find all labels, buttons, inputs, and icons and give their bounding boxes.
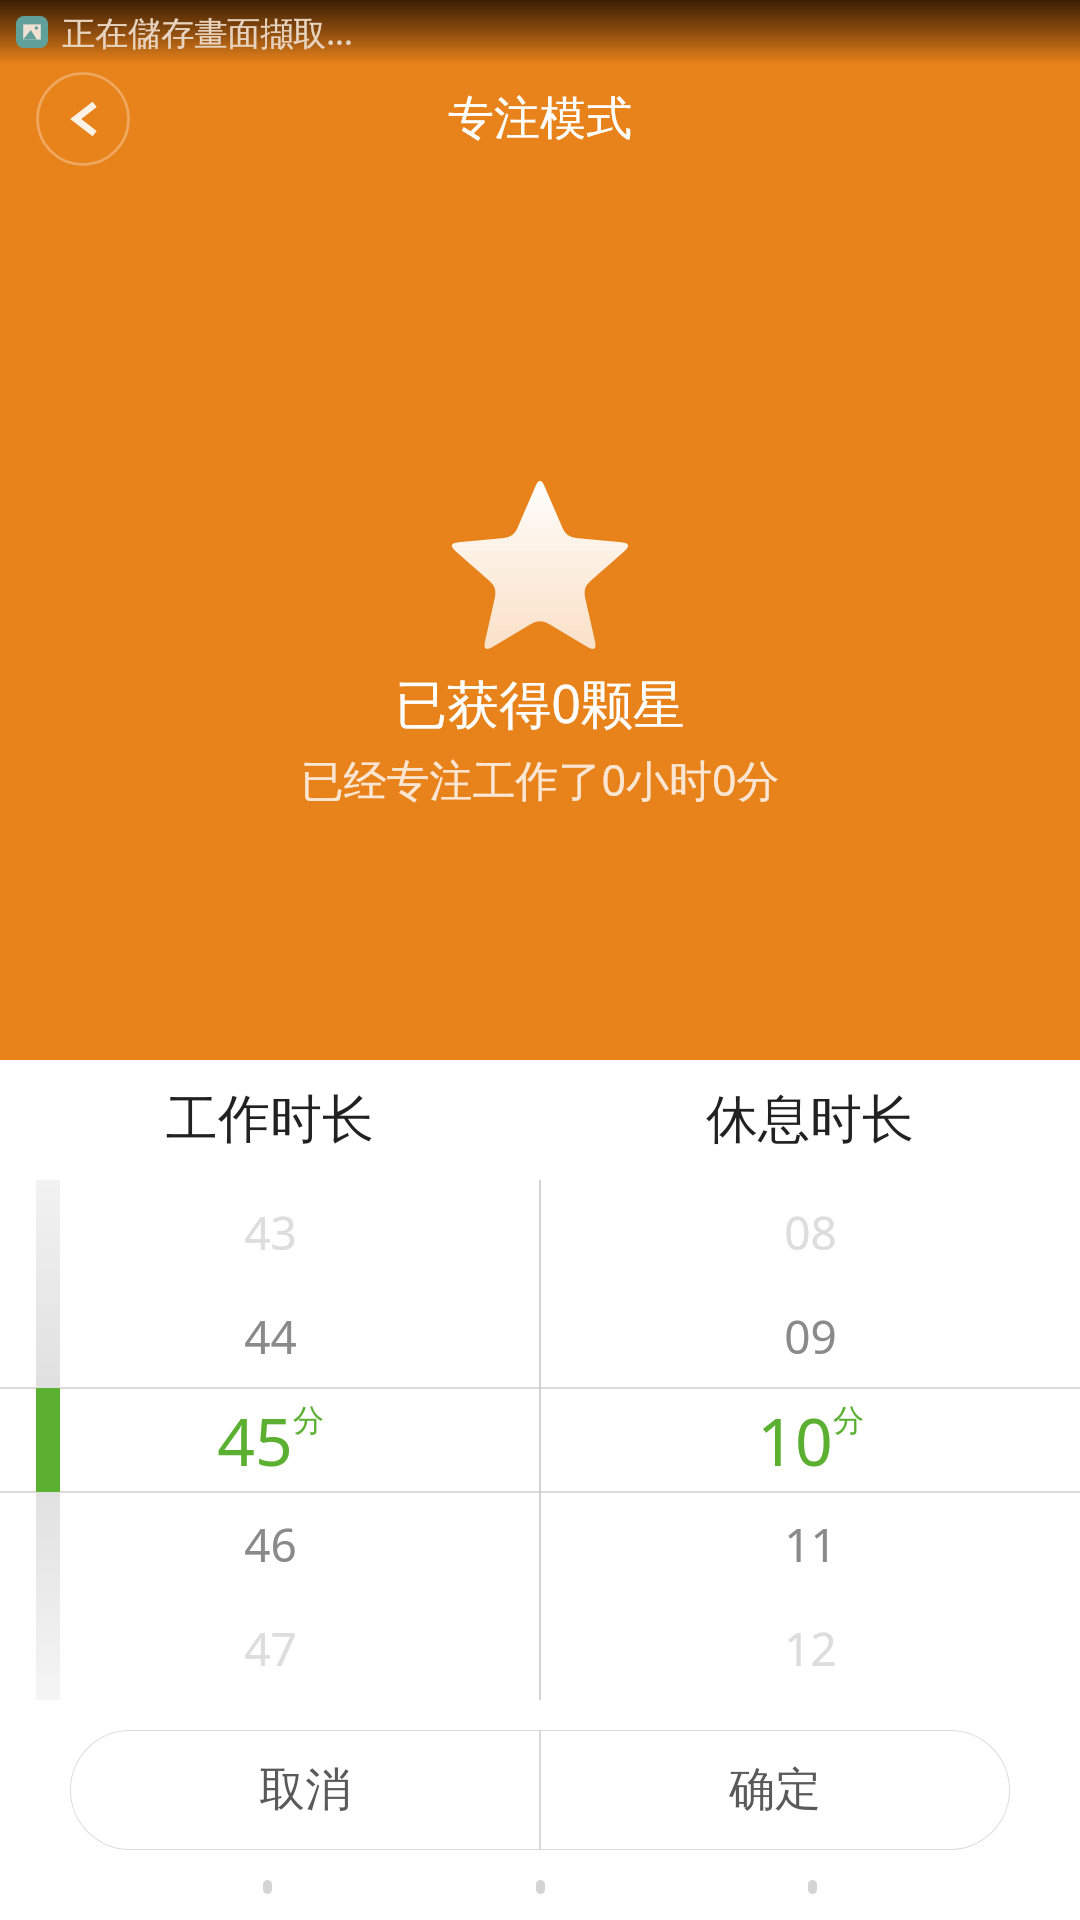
- button[interactable]: Back: [36, 72, 130, 166]
- button[interactable]: 休息时长: [540, 1060, 1080, 1180]
- button[interactable]: 工作时长: [0, 1060, 540, 1180]
- staticText: 45: [217, 1395, 293, 1485]
- staticText: 已经专注工作了0小时0分: [300, 750, 780, 809]
- staticText: 11: [784, 1513, 837, 1576]
- staticText: 10: [757, 1395, 833, 1485]
- button[interactable]: 11: [540, 1492, 1080, 1596]
- staticText: 12: [784, 1617, 837, 1680]
- staticText: 已获得0颗星: [395, 667, 685, 738]
- staticText: 46: [244, 1513, 297, 1576]
- button[interactable]: 确定: [540, 1730, 1010, 1850]
- staticText: 分: [833, 1401, 864, 1440]
- button[interactable]: 09: [540, 1284, 1080, 1388]
- staticText: 08: [784, 1201, 837, 1264]
- staticText: 09: [784, 1305, 837, 1368]
- staticText: 取消: [259, 1761, 351, 1819]
- staticText: 确定: [729, 1761, 821, 1819]
- button[interactable]: 43: [0, 1180, 540, 1284]
- button[interactable]: 08: [540, 1180, 1080, 1284]
- button[interactable]: 12: [540, 1596, 1080, 1700]
- button[interactable]: 47: [0, 1596, 540, 1700]
- button[interactable]: Navigation: [263, 1880, 272, 1894]
- button[interactable]: 44: [0, 1284, 540, 1388]
- button[interactable]: Navigation: [536, 1880, 545, 1894]
- staticText: 47: [244, 1617, 297, 1680]
- staticText: 43: [244, 1201, 297, 1264]
- staticText: 工作时长: [166, 1087, 374, 1153]
- staticText: 分: [293, 1401, 324, 1440]
- button[interactable]: 45: [0, 1388, 540, 1492]
- staticText: 休息时长: [706, 1087, 914, 1153]
- staticText: 专注模式: [448, 90, 632, 148]
- staticText: 44: [244, 1305, 297, 1368]
- staticText: 正在儲存畫面擷取...: [62, 10, 353, 55]
- button[interactable]: 取消: [70, 1730, 540, 1850]
- button[interactable]: Navigation: [808, 1880, 817, 1894]
- button[interactable]: 10: [540, 1388, 1080, 1492]
- button[interactable]: 46: [0, 1492, 540, 1596]
